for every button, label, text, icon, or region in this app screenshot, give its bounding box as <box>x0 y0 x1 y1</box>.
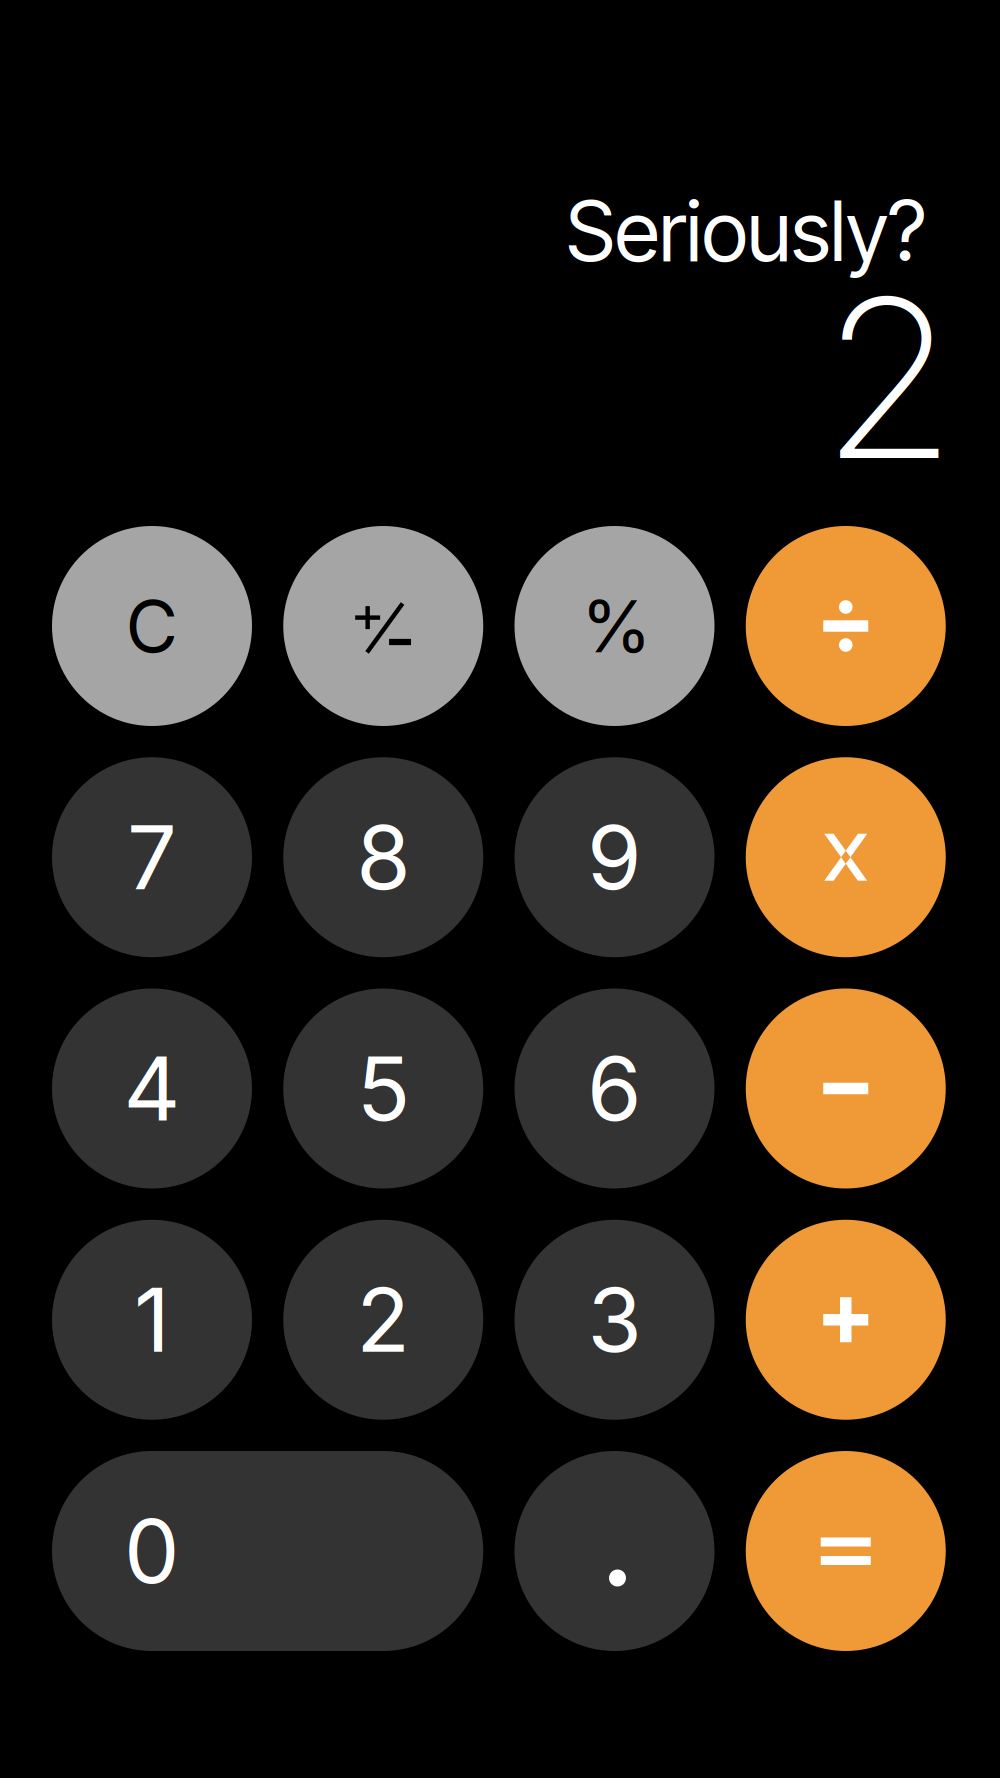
staticText: 8 <box>356 804 410 910</box>
button[interactable]: Decimal point <box>514 1451 714 1651</box>
staticText: 2 <box>821 245 957 511</box>
staticText: 6 <box>587 1035 642 1142</box>
button[interactable]: Multiply <box>746 757 946 957</box>
button[interactable]: C <box>52 526 252 726</box>
staticText: C <box>125 582 178 669</box>
staticText: 4 <box>123 1035 180 1142</box>
button[interactable]: 4 <box>52 988 252 1188</box>
button[interactable]: 2 <box>283 1220 483 1420</box>
button[interactable]: 5 <box>283 988 483 1188</box>
staticText: Seriously? <box>566 181 926 281</box>
staticText: 1 <box>134 1266 170 1373</box>
button[interactable]: % <box>514 526 714 726</box>
button[interactable]: 7 <box>52 757 252 957</box>
button[interactable]: Plus <box>746 1220 946 1420</box>
staticText: 0 <box>124 1498 180 1604</box>
button[interactable]: Equals <box>746 1451 946 1651</box>
staticText: 2 <box>356 1266 410 1373</box>
button[interactable]: 1 <box>52 1220 252 1420</box>
button[interactable]: 9 <box>514 757 714 957</box>
button[interactable]: Divide <box>746 526 946 726</box>
button[interactable]: 0 <box>52 1451 483 1651</box>
staticText: % <box>581 582 652 669</box>
button[interactable]: Minus <box>746 988 946 1188</box>
staticText: 5 <box>357 1035 410 1142</box>
button[interactable]: 3 <box>514 1220 714 1420</box>
staticText: 3 <box>587 1266 641 1373</box>
staticText: 9 <box>587 804 642 910</box>
button[interactable]: 8 <box>283 757 483 957</box>
button[interactable]: Toggle sign <box>283 526 483 726</box>
staticText: 7 <box>127 804 177 910</box>
button[interactable]: 6 <box>514 988 714 1188</box>
